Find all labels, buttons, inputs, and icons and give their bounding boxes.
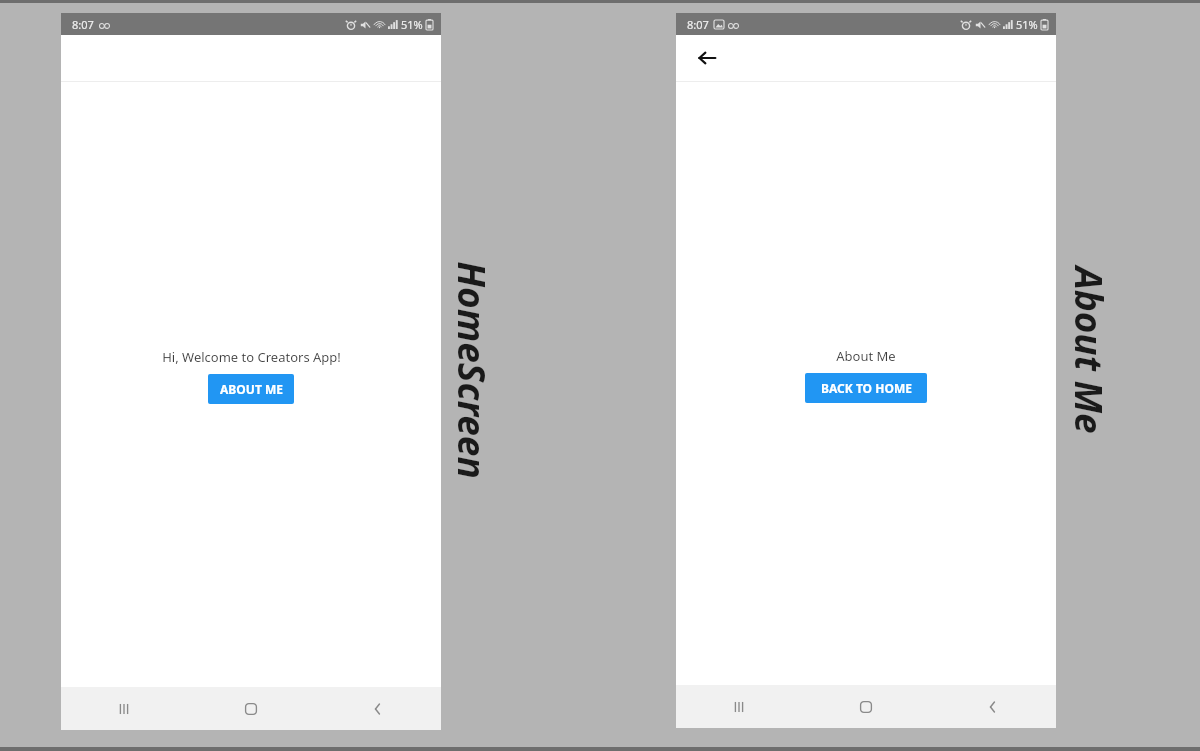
button[interactable]: Home (802, 685, 929, 728)
staticText: 8:07 (72, 17, 94, 32)
button[interactable]: ABOUT ME (208, 374, 294, 404)
button[interactable]: Recents (676, 685, 802, 728)
button[interactable]: Back (314, 687, 441, 730)
staticText: ABOUT ME (220, 381, 283, 397)
staticText: HomeScreen (448, 261, 498, 479)
button[interactable]: Back (929, 685, 1056, 728)
staticText: About Me (1065, 266, 1115, 434)
button[interactable]: Home (187, 687, 314, 730)
staticText: About Me (836, 347, 896, 365)
staticText: 51% (1016, 17, 1038, 32)
staticText: Hi, Welcome to Creators App! (162, 348, 341, 366)
staticText: 8:07 (687, 17, 709, 32)
button[interactable]: Recents (61, 687, 187, 730)
staticText: BACK TO HOME (821, 380, 912, 396)
button[interactable]: BACK TO HOME (805, 373, 927, 403)
staticText: 51% (401, 17, 423, 32)
button[interactable]: Back (690, 41, 724, 75)
